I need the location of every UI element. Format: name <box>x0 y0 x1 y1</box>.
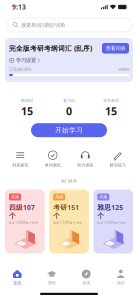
staticText: 已完成0.06% <box>9 67 31 72</box>
staticText: 我的 <box>117 280 125 285</box>
button[interactable]: 开始学习 <box>31 123 107 137</box>
staticText: 发现 <box>82 280 90 285</box>
staticText: 复习词 <box>63 98 75 103</box>
staticText: 四级107个 <box>9 203 35 220</box>
staticText: 学习设置 <box>16 57 36 64</box>
button[interactable]: 列表速览 <box>4 150 36 168</box>
staticText: 0 <box>66 104 72 118</box>
staticText: 9:13 <box>12 3 26 11</box>
staticText: 15 <box>105 104 117 118</box>
button[interactable]: 默写练习 <box>101 150 134 168</box>
staticText: 开始学习 <box>55 126 83 134</box>
button[interactable]: 发现 <box>69 269 103 285</box>
button[interactable]: 搜索单词/课程/词单 <box>6 18 132 32</box>
button[interactable]: 单词测试 <box>36 150 69 168</box>
button[interactable]: 高频 <box>5 189 45 253</box>
staticText: 未学单词 <box>103 98 119 103</box>
staticText: 5/8499 <box>118 67 129 72</box>
staticText: 考研151个 <box>53 203 79 220</box>
staticText: 高频 <box>55 194 63 199</box>
button[interactable]: 高频 <box>49 189 89 253</box>
staticText: 收录了4500多个单词 <box>97 221 126 224</box>
staticText: 高频 <box>11 194 19 199</box>
staticText: 默写练习 <box>110 163 126 168</box>
button[interactable]: 高频 <box>93 189 133 253</box>
staticText: 热门推荐 <box>61 179 77 183</box>
staticText: 单词测试 <box>45 163 61 168</box>
button[interactable]: 听力训练 <box>69 150 101 168</box>
staticText: 收录了4000多个单词 <box>9 221 38 224</box>
staticText: 高频 <box>99 194 107 199</box>
staticText: 完全版考研考纲词汇 (乱序) <box>9 44 92 53</box>
button[interactable]: 学习设置 <box>5 54 133 64</box>
button[interactable]: 课程 <box>34 269 69 285</box>
staticText: 课程 <box>48 280 56 285</box>
staticText: 15 <box>21 104 33 118</box>
staticText: 查看词表 <box>105 45 125 52</box>
button[interactable]: 我的 <box>103 269 138 285</box>
staticText: 搜索单词/课程/词单 <box>21 21 65 29</box>
button[interactable]: 首页 <box>0 269 34 285</box>
button[interactable]: 查看词表 <box>102 43 129 54</box>
staticText: 列表速览 <box>12 163 28 168</box>
staticText: 雅思125个 <box>97 203 123 220</box>
staticText: 新增词 <box>21 98 33 103</box>
staticText: 听力训练 <box>77 163 93 168</box>
staticText: 收录了5500多个单词 <box>53 221 82 224</box>
staticText: 首页 <box>13 280 21 285</box>
